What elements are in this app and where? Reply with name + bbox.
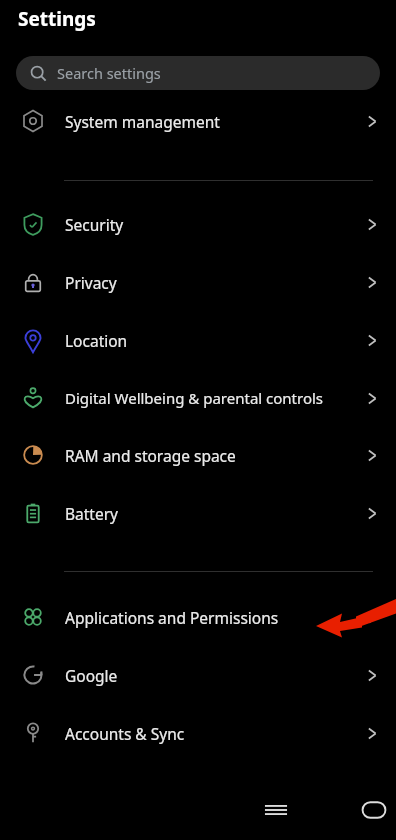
staticText: Digital Wellbeing & parental controls [65,388,324,408]
staticText: Privacy [65,272,117,293]
staticText: Battery [65,503,119,524]
button[interactable]: Battery [0,487,396,539]
staticText: Settings [18,6,96,32]
staticText: Search settings [57,63,161,83]
staticText: Google [65,665,118,686]
button[interactable]: Applications and Permissions [0,591,396,643]
button[interactable]: Back [282,780,396,840]
button[interactable]: RAM and storage space [0,429,396,481]
staticText: System management [65,111,220,132]
button[interactable]: Location [0,314,396,366]
button[interactable]: Home [176,780,396,840]
staticText: Location [65,330,128,351]
button[interactable]: Privacy [0,256,396,308]
button[interactable]: Recent apps [78,780,396,840]
button[interactable]: System management [0,95,396,147]
button[interactable]: Google [0,649,396,701]
staticText: Accounts & Sync [65,723,185,744]
button[interactable]: Security [0,198,396,250]
button[interactable]: Search settings [16,56,380,90]
staticText: Security [65,214,124,235]
staticText: Applications and Permissions [65,607,279,628]
button[interactable]: Accounts & Sync [0,707,396,759]
button[interactable]: Digital Wellbeing & parental controls [0,372,396,424]
staticText: RAM and storage space [65,445,236,466]
